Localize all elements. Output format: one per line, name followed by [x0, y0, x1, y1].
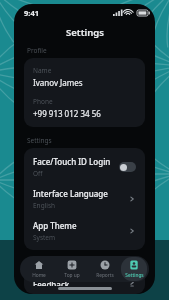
- staticText: Name: [33, 66, 52, 75]
- button[interactable]: Face/Touch ID Login toggle, off: [119, 162, 136, 172]
- button[interactable]: Interface Language: [33, 188, 136, 210]
- staticText: System: [33, 233, 56, 242]
- staticText: Home: [32, 272, 46, 279]
- staticText: Top up: [64, 272, 80, 279]
- button[interactable]: App Theme: [33, 220, 136, 242]
- staticText: Feedback: [33, 279, 70, 286]
- button[interactable]: Settings: [121, 257, 147, 281]
- staticText: Settings: [125, 272, 144, 279]
- staticText: Profile: [27, 46, 47, 55]
- staticText: Phone: [33, 97, 53, 106]
- button[interactable]: Feedback: [33, 279, 136, 286]
- staticText: Support: [27, 259, 52, 268]
- staticText: Reports: [96, 272, 114, 279]
- staticText: English: [33, 201, 56, 210]
- button[interactable]: Reports: [88, 257, 121, 281]
- staticText: Ivanov James: [33, 77, 83, 88]
- staticText: Off: [33, 169, 43, 178]
- button[interactable]: Face/Touch ID Login: [33, 156, 136, 178]
- button[interactable]: Home: [22, 257, 55, 281]
- staticText: Interface Language: [33, 188, 108, 199]
- button[interactable]: Phone: [33, 97, 136, 119]
- staticText: Settings: [27, 136, 52, 145]
- button[interactable]: Top up: [55, 257, 88, 281]
- staticText: Face/Touch ID Login: [33, 156, 111, 167]
- staticText: +99 913 012 34 56: [33, 108, 101, 119]
- staticText: 9:41: [24, 8, 39, 18]
- button[interactable]: Name: [33, 66, 136, 88]
- staticText: Settings: [66, 26, 104, 39]
- staticText: App Theme: [33, 220, 77, 231]
